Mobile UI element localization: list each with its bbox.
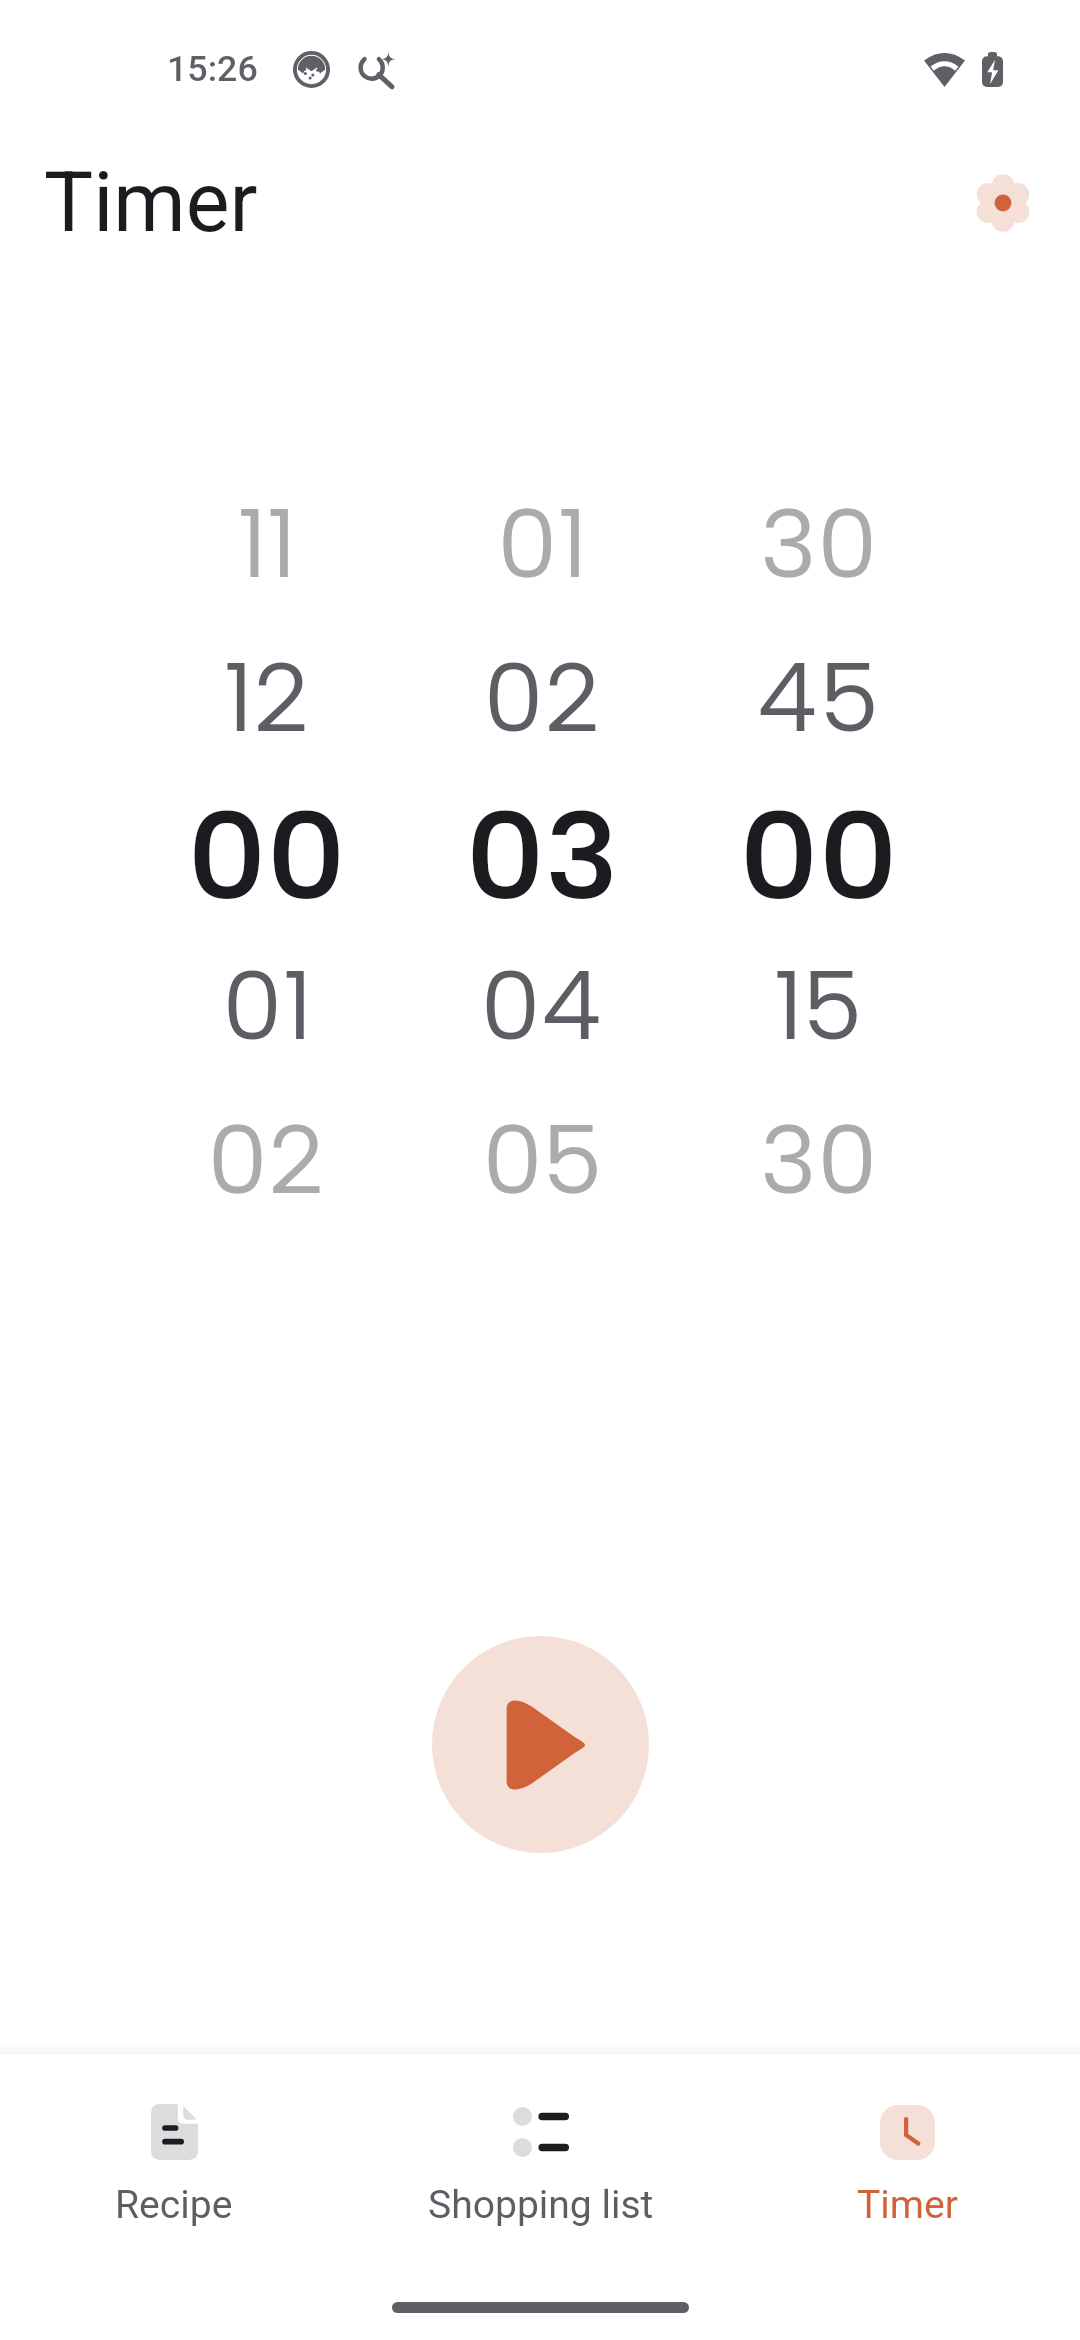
- staticText: Timer: [44, 154, 258, 251]
- button[interactable]: 11: [129, 465, 404, 619]
- staticText: Shopping list: [428, 2182, 654, 2228]
- button[interactable]: 12: [129, 619, 404, 773]
- button[interactable]: 02: [129, 1081, 404, 1235]
- staticText: 02: [483, 640, 602, 756]
- button[interactable]: 30: [680, 1081, 956, 1235]
- staticText: 15: [773, 948, 863, 1064]
- staticText: 30: [759, 486, 878, 602]
- button[interactable]: 45: [680, 619, 956, 773]
- button[interactable]: 30: [680, 465, 956, 619]
- staticText: Recipe: [115, 2182, 233, 2228]
- staticText: Timer: [857, 2182, 958, 2228]
- staticText: 04: [480, 948, 604, 1064]
- button[interactable]: 05: [404, 1081, 680, 1235]
- staticText: 01: [497, 486, 587, 602]
- button[interactable]: 04: [404, 927, 680, 1081]
- staticText: 03: [465, 780, 619, 929]
- button[interactable]: Start timer: [432, 1636, 649, 1853]
- staticText: 05: [482, 1102, 603, 1218]
- button[interactable]: 02: [404, 619, 680, 773]
- staticText: 11: [237, 486, 296, 602]
- staticText: 01: [222, 948, 312, 1064]
- button[interactable]: Shopping list: [369, 2054, 713, 2228]
- button[interactable]: Recipe: [2, 2054, 346, 2228]
- button[interactable]: 01: [129, 927, 404, 1081]
- staticText: 45: [756, 640, 880, 756]
- staticText: 00: [187, 780, 346, 929]
- button[interactable]: 03: [404, 773, 680, 927]
- staticText: 00: [739, 780, 898, 929]
- button[interactable]: 00: [680, 773, 956, 927]
- button[interactable]: 15: [680, 927, 956, 1081]
- button[interactable]: 01: [404, 465, 680, 619]
- staticText: 12: [223, 640, 311, 756]
- staticText: 02: [207, 1102, 326, 1218]
- button[interactable]: Settings: [942, 142, 1063, 263]
- staticText: 30: [759, 1102, 878, 1218]
- staticText: 15:26: [167, 48, 258, 90]
- button[interactable]: 00: [129, 773, 404, 927]
- button[interactable]: Timer: [735, 2054, 1079, 2228]
